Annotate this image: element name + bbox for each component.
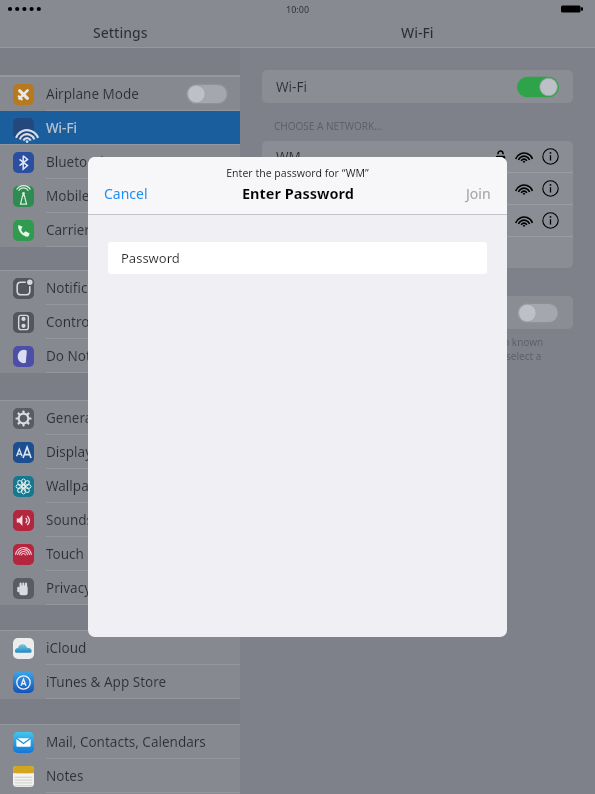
button[interactable]: Notes xyxy=(0,759,240,792)
staticText: Guest xyxy=(276,180,314,198)
button[interactable]: Network info xyxy=(542,180,559,197)
staticText: Control Centre xyxy=(46,313,139,331)
button[interactable]: Guest xyxy=(262,173,573,204)
button[interactable]: Touch ID & Passcode xyxy=(0,537,240,570)
staticText: Carrier xyxy=(46,221,90,239)
staticText: Display & Brightness xyxy=(46,443,178,461)
button[interactable]: Display & Brightness xyxy=(0,435,240,468)
staticText: Notifications xyxy=(46,279,127,297)
button[interactable]: Notifications xyxy=(0,271,240,304)
button[interactable]: Airplane Mode xyxy=(0,77,240,110)
button[interactable]: Ask to Join Networks xyxy=(262,296,573,329)
button[interactable]: Bluetooth xyxy=(0,145,240,178)
staticText: Privacy xyxy=(46,579,92,597)
staticText: iCloud xyxy=(46,639,87,657)
staticText: Mail, Contacts, Calendars xyxy=(46,733,206,751)
staticText: Known networks will be joined automatica… xyxy=(274,335,544,377)
button[interactable]: iTunes & App Store xyxy=(0,665,240,698)
button[interactable]: Mobile Data xyxy=(0,179,240,212)
staticText: iTunes & App Store xyxy=(46,673,167,691)
staticText: Bluetooth xyxy=(46,153,109,171)
button[interactable]: Network info xyxy=(542,148,559,165)
staticText: CHOOSE A NETWORK... xyxy=(274,119,383,133)
button[interactable]: Cancel xyxy=(88,178,164,209)
staticText: General xyxy=(46,409,96,427)
staticText: Mobile Data xyxy=(46,187,123,205)
button[interactable]: Join xyxy=(450,178,507,209)
staticText: Airplane Mode xyxy=(46,85,139,103)
staticText: Join xyxy=(466,184,491,203)
button[interactable]: Carrier xyxy=(0,213,240,246)
button[interactable]: Network info xyxy=(542,212,559,229)
button[interactable]: Control Centre xyxy=(0,305,240,338)
staticText: Password xyxy=(121,249,180,267)
button[interactable]: Password xyxy=(108,242,487,274)
button[interactable]: iCloud xyxy=(0,631,240,664)
staticText: Enter the password for “WM” xyxy=(226,166,369,180)
staticText: Sounds xyxy=(46,511,94,529)
button[interactable]: Privacy xyxy=(0,571,240,604)
staticText: Cancel xyxy=(104,184,148,203)
button[interactable]: General xyxy=(0,401,240,434)
button[interactable]: Other xyxy=(262,205,573,236)
staticText: WM xyxy=(276,148,301,166)
staticText: Do Not Disturb xyxy=(46,347,142,365)
staticText: Notes xyxy=(46,767,84,785)
staticText: Other xyxy=(276,212,313,230)
staticText: Wi-Fi xyxy=(46,119,77,137)
button[interactable]: WM xyxy=(262,141,573,172)
staticText: Wallpaper xyxy=(46,477,111,495)
button[interactable]: Wi-Fi xyxy=(262,70,573,103)
button[interactable]: Other... xyxy=(262,237,573,268)
staticText: Touch ID & Passcode xyxy=(46,545,178,563)
button[interactable]: Sounds xyxy=(0,503,240,536)
staticText: 10:00 xyxy=(286,3,310,15)
staticText: Wi-Fi xyxy=(401,23,434,42)
staticText: Wi-Fi xyxy=(276,78,307,96)
staticText: Settings xyxy=(93,23,148,42)
button[interactable]: Mail, Contacts, Calendars xyxy=(0,725,240,758)
staticText: Enter Password xyxy=(242,183,354,203)
button[interactable]: Wi-Fi xyxy=(0,111,240,144)
button[interactable]: Wallpaper xyxy=(0,469,240,502)
button[interactable]: Do Not Disturb xyxy=(0,339,240,372)
